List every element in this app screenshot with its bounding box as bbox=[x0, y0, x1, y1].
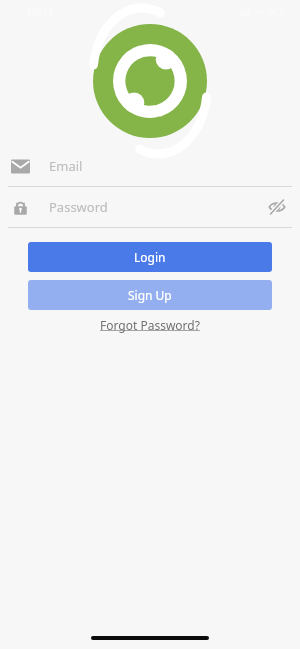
staticText: Forgot Password? bbox=[100, 317, 200, 333]
staticText: Password bbox=[49, 198, 108, 216]
button[interactable]: Email icon bbox=[0, 146, 300, 186]
button[interactable]: Password icon bbox=[0, 187, 300, 227]
other: Password icon bbox=[11, 198, 30, 217]
staticText: Login bbox=[134, 249, 166, 265]
other: Email icon bbox=[11, 157, 30, 176]
button[interactable]: Show password bbox=[265, 195, 289, 219]
staticText: Sign Up bbox=[128, 287, 172, 303]
button[interactable]: Forgot Password? bbox=[96, 315, 204, 335]
button[interactable]: Sign Up bbox=[28, 280, 272, 310]
staticText: Email bbox=[49, 157, 83, 175]
button[interactable]: Login bbox=[28, 242, 272, 272]
